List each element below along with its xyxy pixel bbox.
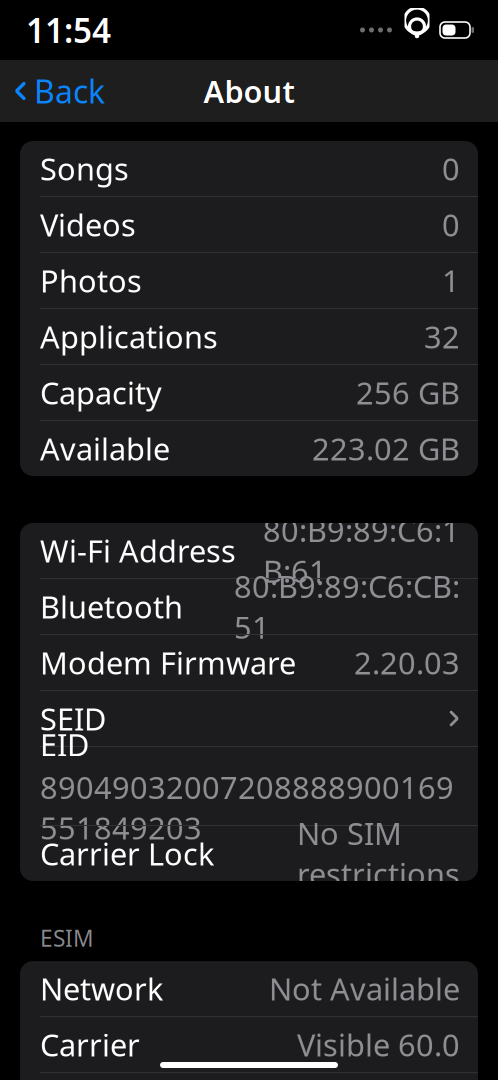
- button[interactable]: SEID: [20, 691, 478, 746]
- staticText: 0: [442, 204, 460, 245]
- staticText: Applications: [40, 316, 218, 357]
- staticText: Carrier: [40, 1024, 140, 1065]
- staticText: SEID: [40, 698, 106, 739]
- staticText: Songs: [40, 148, 129, 189]
- staticText: Back: [34, 70, 105, 112]
- staticText: Wi-Fi Address: [40, 530, 236, 571]
- staticText: 0: [442, 148, 460, 189]
- staticText: Network: [40, 968, 163, 1009]
- staticText: Carrier Lock: [40, 833, 214, 874]
- staticText: 11:54: [26, 8, 111, 52]
- staticText: EID: [40, 724, 89, 765]
- staticText: 80:B9:89:C6:1B:61: [263, 510, 460, 591]
- button[interactable]: Back: [0, 62, 105, 120]
- staticText: 89049032007208888900169551849203: [40, 767, 454, 848]
- staticText: 223.02 GB: [312, 428, 460, 469]
- staticText: Capacity: [40, 372, 162, 413]
- staticText: Not Available: [269, 968, 460, 1009]
- staticText: Available: [40, 428, 170, 469]
- staticText: 2.20.03: [354, 642, 460, 683]
- staticText: 256 GB: [356, 372, 460, 413]
- staticText: 32: [424, 316, 460, 357]
- staticText: Videos: [40, 204, 136, 245]
- staticText: Visible 60.0: [297, 1024, 460, 1065]
- staticText: Bluetooth: [40, 586, 183, 627]
- staticText: No SIM restrictions: [297, 813, 460, 894]
- staticText: Photos: [40, 260, 142, 301]
- staticText: About: [203, 71, 294, 111]
- staticText: Modem Firmware: [40, 642, 296, 683]
- staticText: ESIM: [40, 923, 94, 953]
- staticText: 1: [442, 260, 460, 301]
- staticText: 80:B9:89:C6:CB:51: [234, 566, 460, 647]
